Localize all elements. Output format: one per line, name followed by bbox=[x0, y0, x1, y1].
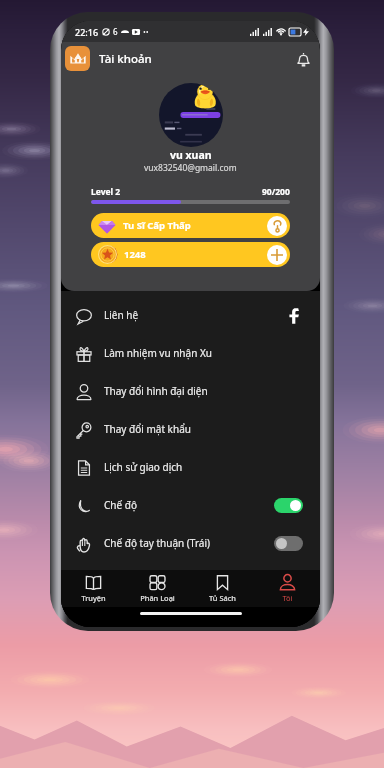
staticText: Truyện bbox=[81, 593, 106, 603]
button[interactable]: Truyện bbox=[61, 570, 125, 607]
button[interactable]: App logo bbox=[65, 46, 90, 71]
button[interactable]: Chế độ bbox=[75, 491, 303, 519]
staticText: 90/200 bbox=[262, 186, 290, 198]
staticText: Tu Sĩ Cấp Thấp bbox=[123, 219, 191, 232]
staticText: Thay đổi hình đại diện bbox=[104, 384, 208, 398]
button[interactable]: Tôi bbox=[255, 570, 320, 607]
staticText: Tủ Sách bbox=[209, 593, 236, 603]
button[interactable]: Switch off bbox=[274, 536, 303, 551]
button[interactable]: Chế độ tay thuận (Trái) bbox=[75, 529, 303, 557]
button[interactable]: Liên hệ bbox=[75, 301, 303, 329]
staticText: Tài khoản bbox=[99, 51, 152, 67]
staticText: Liên hệ bbox=[104, 308, 139, 322]
staticText: 22:16 bbox=[75, 26, 99, 38]
staticText: Chế độ bbox=[104, 498, 137, 512]
staticText: Tôi bbox=[282, 593, 293, 603]
staticText: Thay đổi mật khẩu bbox=[104, 422, 191, 436]
button[interactable]: Phân Loại bbox=[125, 570, 190, 607]
button[interactable]: Tủ Sách bbox=[190, 570, 255, 607]
staticText: Làm nhiệm vu nhận Xu bbox=[104, 346, 212, 360]
staticText: Level 2 bbox=[91, 186, 121, 198]
staticText: 6 bbox=[113, 26, 118, 37]
staticText: Phân Loại bbox=[140, 593, 175, 603]
staticText: Lịch sử giao dịch bbox=[104, 460, 183, 474]
button[interactable]: Help bbox=[267, 216, 287, 236]
staticText: Chế độ tay thuận (Trái) bbox=[104, 536, 211, 550]
button[interactable]: Thay đổi hình đại diện bbox=[75, 377, 303, 405]
button[interactable]: Switch on bbox=[274, 498, 303, 513]
button[interactable]: Thay đổi mật khẩu bbox=[75, 415, 303, 443]
button[interactable]: Làm nhiệm vu nhận Xu bbox=[75, 339, 303, 367]
button[interactable]: Profile avatar bbox=[159, 83, 223, 147]
button[interactable]: 1248 bbox=[91, 242, 290, 267]
staticText: vu xuan bbox=[170, 148, 212, 162]
button[interactable]: Notifications bbox=[291, 47, 315, 71]
staticText: vux832540@gmail.com bbox=[144, 162, 237, 174]
button[interactable]: Tu Sĩ Cấp Thấp bbox=[91, 213, 290, 238]
button[interactable]: Add coins bbox=[267, 245, 287, 265]
staticText: 1248 bbox=[124, 248, 146, 261]
button[interactable]: Lịch sử giao dịch bbox=[75, 453, 303, 481]
